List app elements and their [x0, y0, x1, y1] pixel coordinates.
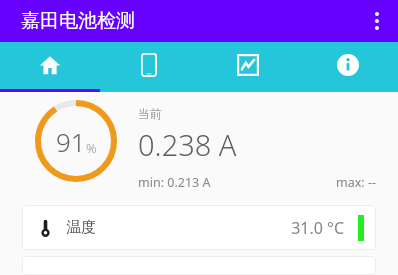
staticText: 0.238 A	[138, 125, 237, 164]
button[interactable]: Home	[0, 42, 99, 92]
staticText: 温度	[66, 218, 96, 237]
staticText: %	[86, 139, 97, 157]
staticText: 当前	[138, 106, 162, 121]
staticText: 嘉田电池检测	[21, 9, 135, 33]
staticText: 91	[56, 124, 86, 159]
button[interactable]: Chart	[198, 42, 298, 92]
staticText: 31.0 °C	[291, 217, 344, 239]
button[interactable]: Info	[298, 42, 398, 92]
button[interactable]: Device	[99, 42, 198, 92]
staticText: max: --	[336, 174, 376, 191]
button[interactable]: More options	[356, 0, 398, 42]
button[interactable]	[22, 256, 376, 275]
button[interactable]: 温度	[22, 205, 376, 250]
staticText: min: 0.213 A	[138, 174, 211, 191]
